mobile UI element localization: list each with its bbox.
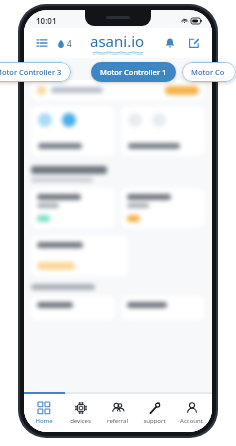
- staticText: Motor Controller 1: [100, 67, 167, 77]
- button[interactable]: Motor Controller 1: [91, 62, 176, 82]
- staticText: referral: [107, 417, 128, 425]
- staticText: 10:01: [36, 15, 57, 26]
- button[interactable]: Account: [173, 394, 210, 432]
- staticText: Account: [180, 417, 203, 425]
- button[interactable]: Motor Controller 3: [0, 62, 71, 82]
- staticText: support: [143, 417, 166, 425]
- button[interactable]: support: [136, 394, 173, 432]
- button[interactable]: Menu: [33, 34, 51, 52]
- staticText: Motor Controller 3: [0, 67, 62, 77]
- button[interactable]: Home: [26, 394, 62, 432]
- button[interactable]: devices: [62, 394, 99, 432]
- staticText: Motor Controller 4: [191, 67, 227, 77]
- button[interactable]: Compose: [185, 34, 203, 52]
- button[interactable]: Notifications: [161, 34, 179, 52]
- staticText: 4: [67, 38, 72, 49]
- button[interactable]: Motor Controller 4: [182, 62, 236, 82]
- button[interactable]: referral: [99, 394, 136, 432]
- staticText: asani.io: [90, 31, 145, 51]
- staticText: devices: [70, 417, 91, 425]
- staticText: Home: [35, 417, 53, 425]
- button[interactable]: 4: [55, 36, 74, 51]
